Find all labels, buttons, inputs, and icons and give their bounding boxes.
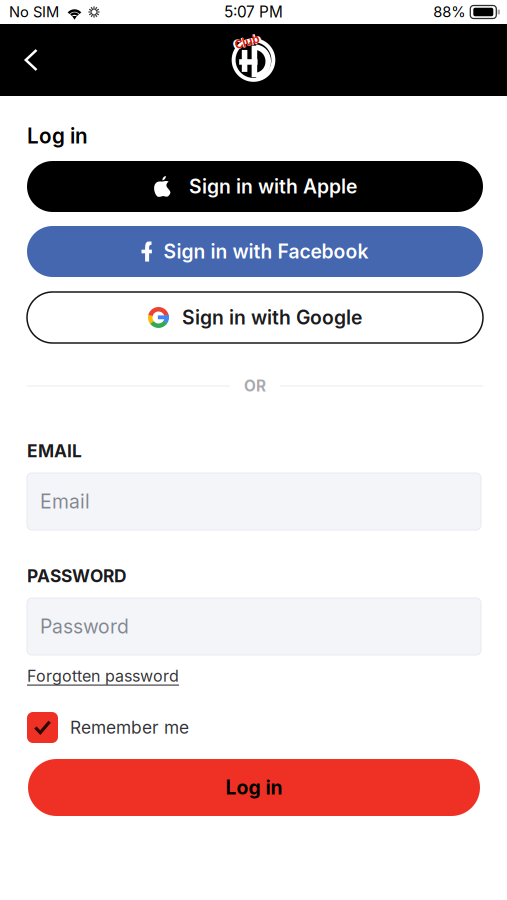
button[interactable]: Remember me <box>27 685 483 743</box>
staticText: EMAIL <box>27 440 82 461</box>
staticText: Club <box>234 35 259 49</box>
staticText: Forgotten password <box>27 666 179 686</box>
button[interactable]: Back <box>0 24 61 95</box>
staticText: PASSWORD <box>27 565 127 586</box>
staticText: OR <box>244 377 266 395</box>
staticText: Email <box>40 490 90 513</box>
staticText: Remember me <box>70 717 189 738</box>
button[interactable]: Sign in with Apple <box>27 161 483 212</box>
staticText: Password <box>40 615 129 638</box>
staticText: Sign in with Google <box>182 306 362 329</box>
staticText: Log in <box>27 123 88 148</box>
staticText: 5:07 PM <box>224 3 283 21</box>
staticText: Sign in with Facebook <box>163 240 368 263</box>
button[interactable]: Sign in with Facebook <box>27 226 483 277</box>
staticText: Log in <box>225 776 282 799</box>
button[interactable]: Sign in with Google <box>27 292 483 343</box>
staticText: No SIM <box>9 3 59 21</box>
staticText: Sign in with Apple <box>189 175 357 198</box>
staticText: Club <box>232 34 261 50</box>
staticText: 88% <box>433 3 465 21</box>
button[interactable]: Forgotten password <box>27 655 179 685</box>
button[interactable]: Log in <box>27 759 480 816</box>
